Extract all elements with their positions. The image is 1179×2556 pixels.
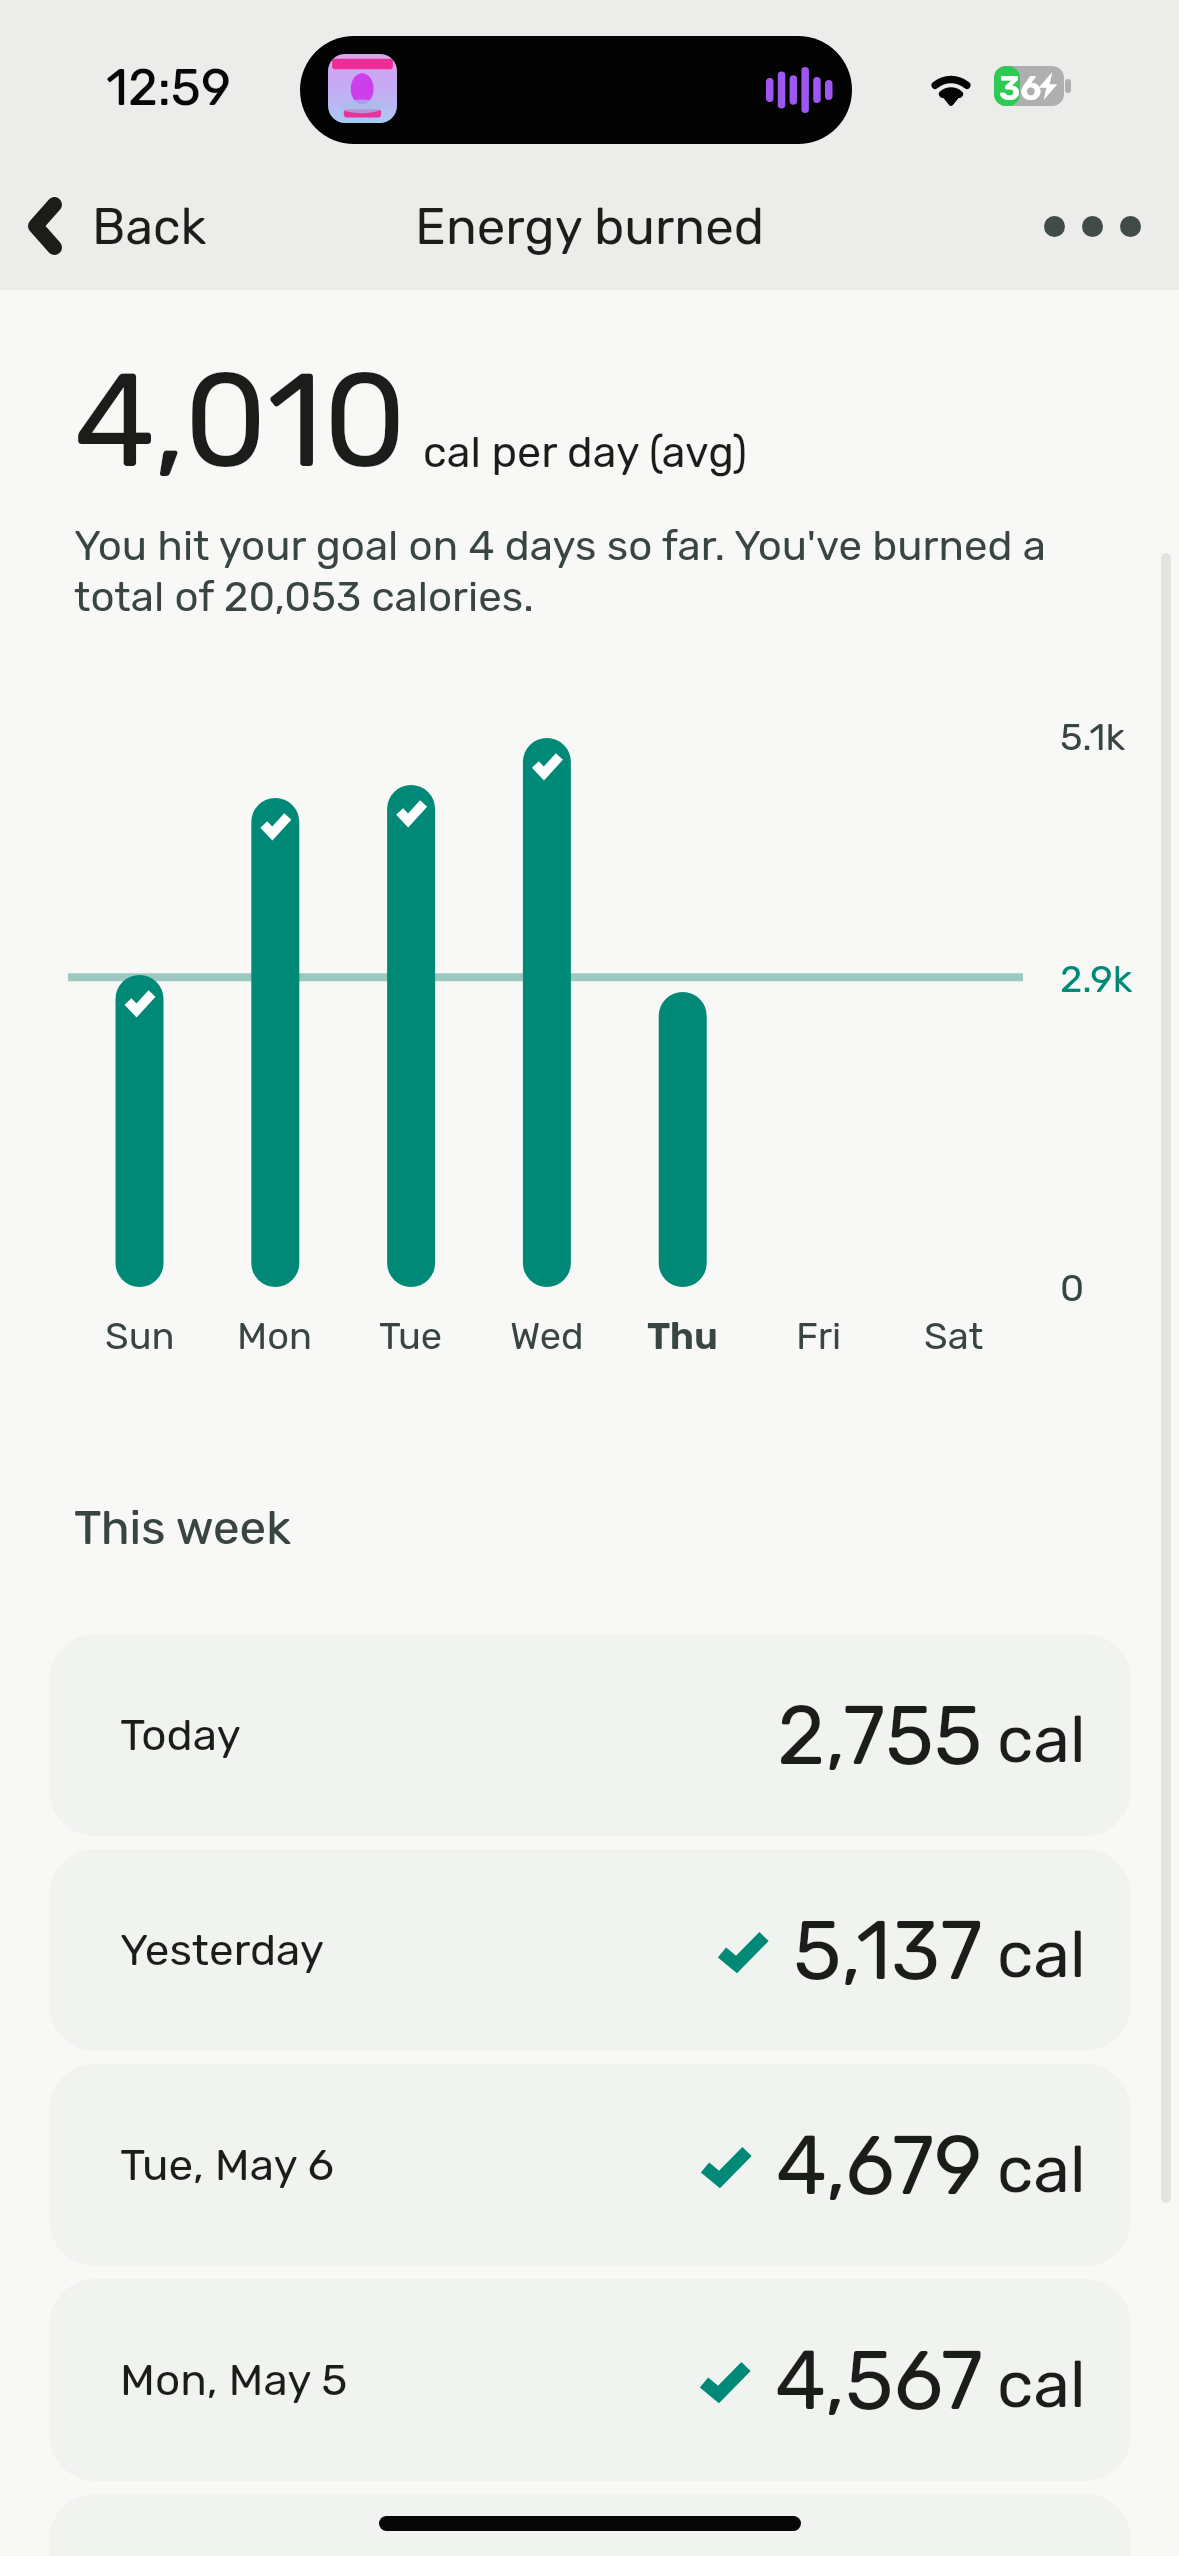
staticText: You hit your goal on 4 days so far. You'… (74, 521, 1046, 622)
button[interactable]: Back (8, 162, 225, 290)
button[interactable] (49, 2494, 1131, 2556)
staticText: Sun (105, 1313, 175, 1358)
staticText: 5,137 (793, 1902, 983, 1999)
staticText: Tue (379, 1313, 443, 1358)
staticText: cal per day (avg) (423, 427, 747, 478)
button[interactable]: Mon, May 5 (49, 2279, 1131, 2481)
staticText: Mon (237, 1313, 313, 1358)
staticText: cal (997, 2130, 1086, 2208)
staticText: This week (74, 1500, 291, 1556)
staticText: Wed (510, 1313, 584, 1358)
staticText: 4,679 (776, 2117, 983, 2214)
other: Wi-Fi (927, 67, 975, 105)
button[interactable]: Yesterday (49, 1849, 1131, 2051)
staticText: 4,567 (775, 2332, 983, 2429)
staticText: 36 (999, 69, 1042, 108)
button[interactable]: More options (1005, 162, 1179, 290)
staticText: Sat (924, 1313, 984, 1358)
staticText: Yesterday (120, 1924, 325, 1976)
staticText: Tue, May 6 (120, 2139, 334, 2191)
staticText: 12:59 (106, 58, 231, 117)
staticText: Mon, May 5 (120, 2354, 348, 2406)
staticText: cal (997, 2345, 1086, 2423)
staticText: Energy burned (415, 196, 765, 256)
staticText: 4,010 (74, 344, 407, 499)
staticText: Fri (796, 1313, 842, 1358)
staticText: Back (92, 197, 207, 256)
staticText: 2.9k (1060, 956, 1133, 1001)
staticText: Thu (647, 1313, 719, 1358)
button[interactable]: Today (49, 1634, 1131, 1836)
staticText: Today (120, 1709, 241, 1761)
staticText: cal (997, 1915, 1086, 1993)
staticText: cal (997, 1700, 1086, 1778)
staticText: 2,755 (777, 1687, 983, 1784)
button[interactable]: Tue, May 6 (49, 2064, 1131, 2266)
staticText: 5.1k (1060, 714, 1126, 759)
staticText: 0 (1060, 1265, 1085, 1310)
